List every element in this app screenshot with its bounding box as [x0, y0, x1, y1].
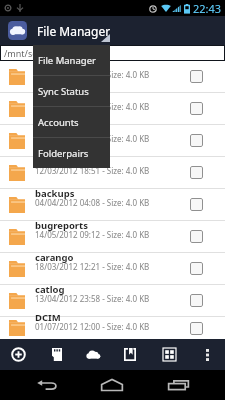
staticText: apps	[35, 123, 58, 136]
staticText: 04/04/2012 04:08 - Size: 4.0 KB	[35, 197, 150, 208]
staticText: Accounts	[38, 116, 79, 129]
staticText: 02/02/2012 00:00 - Size: 4.0 KB	[35, 101, 150, 112]
button[interactable]: Home	[88, 370, 136, 400]
button[interactable]: Select carango	[190, 262, 203, 275]
button[interactable]: File Manager	[33, 45, 110, 75]
button[interactable]: apps	[0, 125, 225, 156]
button[interactable]: Android	[0, 61, 225, 92]
staticText: 13/04/2012 23:58 - Size: 4.0 KB	[35, 293, 150, 304]
button[interactable]: aLogcat	[0, 93, 225, 124]
staticText: Sync Status	[38, 85, 89, 98]
staticText: DCIM	[35, 311, 61, 324]
button[interactable]: Back	[23, 370, 71, 400]
staticText: 22:43	[193, 1, 222, 16]
staticText: bugreports	[35, 219, 88, 232]
staticText: 14/05/2012 09:12 - Size: 4.0 KB	[35, 229, 150, 240]
staticText: 03/03/2012 00:00 - Size: 4.0 KB	[35, 133, 150, 144]
button[interactable]: Select aLogcat	[190, 102, 203, 115]
button[interactable]: bugreports	[0, 221, 225, 252]
staticText: backup	[35, 155, 70, 168]
button[interactable]: Select backup	[190, 166, 203, 179]
button[interactable]: backup	[0, 157, 225, 188]
staticText: File Manager	[37, 23, 111, 39]
button[interactable]: carango	[0, 253, 225, 284]
button[interactable]: DCIM	[0, 317, 225, 339]
staticText: backups	[35, 187, 75, 200]
button[interactable]: Add	[3, 339, 33, 370]
button[interactable]: backups	[0, 189, 225, 220]
staticText: Android	[35, 59, 73, 72]
button[interactable]: Recent apps	[154, 370, 202, 400]
button[interactable]: Select Android	[190, 70, 203, 83]
staticText: 01/07/2012 12:00 - Size: 4.0 KB	[35, 321, 150, 330]
staticText: catlog	[35, 283, 65, 296]
staticText: /mnt/sdcard	[4, 47, 57, 59]
button[interactable]: Sync Status	[33, 76, 110, 106]
staticText: 18/03/2012 12:21 - Size: 4.0 KB	[35, 261, 150, 272]
button[interactable]: Select apps	[190, 134, 203, 147]
button[interactable]: File Manager	[0, 16, 225, 45]
button[interactable]: Select bugreports	[190, 230, 203, 243]
button[interactable]: Cloud	[78, 339, 108, 370]
button[interactable]: Grid view	[154, 339, 184, 370]
button[interactable]: More options	[192, 339, 222, 370]
button[interactable]: Select catlog	[190, 294, 203, 307]
button[interactable]: Folderpairs	[33, 138, 110, 168]
button[interactable]: SD card	[42, 339, 72, 370]
button[interactable]: Select backups	[190, 198, 203, 211]
button[interactable]: Bookmarks	[115, 339, 145, 370]
staticText: 12/03/2012 18:51 - Size: 4.0 KB	[35, 165, 150, 176]
staticText: 01/01/2012 00:00 - Size: 4.0 KB	[35, 69, 150, 80]
staticText: carango	[35, 251, 74, 264]
staticText: Folderpairs	[38, 147, 89, 160]
button[interactable]: /mnt/sdcard	[1, 46, 224, 60]
button[interactable]: Accounts	[33, 107, 110, 137]
button[interactable]: catlog	[0, 285, 225, 316]
staticText: aLogcat	[35, 91, 73, 104]
staticText: File Manager	[38, 54, 96, 67]
button[interactable]: Select DCIM	[190, 322, 203, 335]
